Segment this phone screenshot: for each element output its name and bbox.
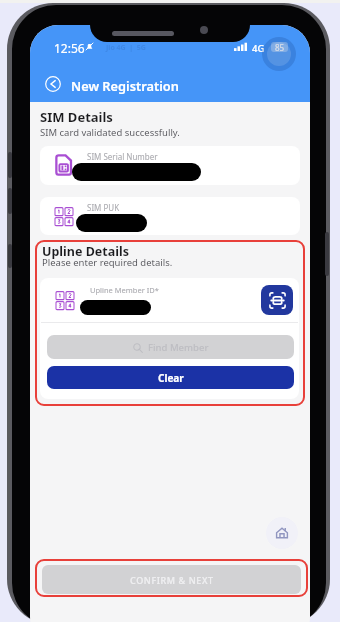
button[interactable]: Scan barcode: [261, 285, 293, 315]
staticText: Please enter required details.: [42, 256, 173, 269]
staticText: Clear: [158, 371, 184, 385]
staticText: 85: [275, 42, 285, 52]
button[interactable]: Clear: [47, 366, 294, 389]
staticText: SIM Serial Number: [87, 151, 158, 162]
button[interactable]: CONFIRM & NEXT: [42, 565, 301, 594]
staticText: SIM PUK: [87, 202, 120, 213]
button[interactable]: Back: [40, 71, 65, 96]
staticText: SIM card validated successfully.: [40, 126, 180, 139]
staticText: CONFIRM & NEXT: [130, 574, 214, 586]
staticText: Find Member: [148, 341, 209, 354]
staticText: Jio 4G | 5G: [106, 43, 150, 53]
staticText: 4G: [252, 42, 265, 55]
staticText: Upline Member ID*: [90, 285, 159, 295]
staticText: SIM Details: [40, 108, 113, 126]
button[interactable]: SIM Serial Number: [40, 146, 300, 185]
staticText: Upline Details: [42, 243, 129, 260]
button[interactable]: SIM PUK: [40, 197, 300, 235]
button[interactable]: Home: [266, 517, 298, 549]
staticText: New Registration: [71, 77, 179, 94]
staticText: 12:56: [54, 40, 85, 56]
button[interactable]: Find Member: [47, 335, 294, 359]
